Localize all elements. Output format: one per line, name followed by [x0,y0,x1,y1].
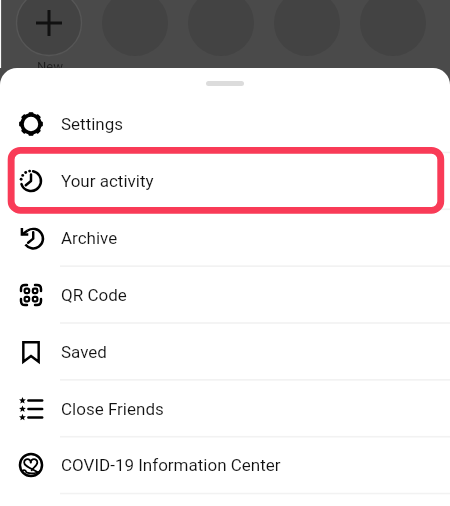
staticText: QR Code [61,285,127,305]
staticText: Saved [61,342,107,362]
button[interactable]: Collapse sheet [197,73,253,93]
staticText: Close Friends [61,399,164,419]
button[interactable]: Saved [0,323,450,380]
button[interactable]: Add to your story [16,0,82,56]
button[interactable]: COVID-19 Information Center [0,436,450,493]
staticText: Your activity [61,171,154,191]
button[interactable]: Archive [0,209,450,266]
staticText: Settings [61,114,124,134]
button[interactable]: Your activity [0,152,450,209]
button[interactable]: Settings [0,95,450,152]
staticText: Archive [61,228,118,248]
staticText: COVID-19 Information Center [61,455,281,475]
button[interactable]: Close Friends [0,380,450,437]
staticText: New [37,59,63,74]
button[interactable]: QR Code [0,266,450,323]
